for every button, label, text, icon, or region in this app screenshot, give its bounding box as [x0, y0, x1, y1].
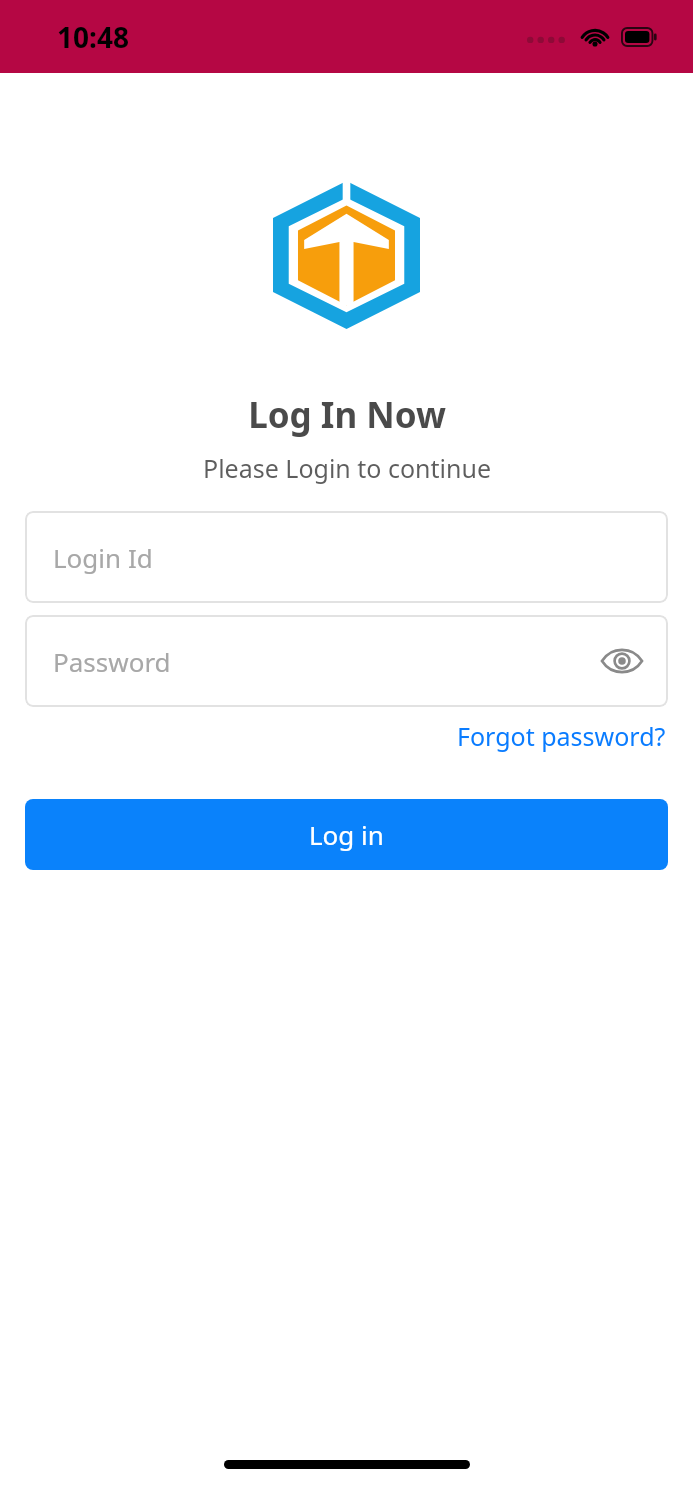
button[interactable]: Show password — [596, 635, 648, 687]
staticText: 10:48 — [57, 18, 129, 56]
staticText: Password — [53, 644, 171, 679]
button[interactable]: Forgot password? — [455, 717, 668, 755]
staticText: Log in — [309, 817, 384, 852]
staticText: Login Id — [53, 540, 153, 575]
button[interactable]: Login Id — [25, 511, 668, 603]
button[interactable]: Log in — [25, 799, 668, 870]
staticText: Please Login to continue — [203, 451, 491, 485]
staticText: Log In Now — [248, 391, 446, 439]
staticText: Forgot password? — [457, 719, 666, 753]
button[interactable]: Password — [25, 615, 668, 707]
